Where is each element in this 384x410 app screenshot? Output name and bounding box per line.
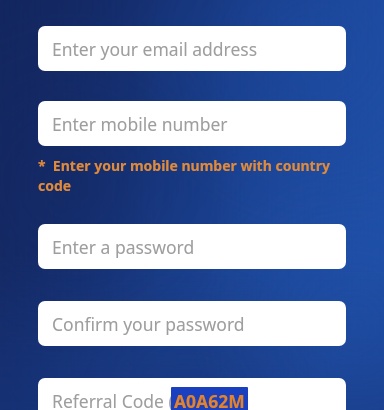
- button[interactable]: Referral code A0A62M: [171, 387, 248, 410]
- button[interactable]: Enter mobile number: [38, 101, 346, 146]
- button[interactable]: Referral Code (O: [38, 378, 346, 410]
- button[interactable]: Confirm your password: [38, 301, 346, 346]
- staticText: A0A62M: [174, 389, 245, 410]
- staticText: Enter mobile number: [52, 112, 228, 136]
- staticText: Enter a password: [52, 235, 195, 259]
- button[interactable]: Enter a password: [38, 224, 346, 269]
- button[interactable]: Enter your email address: [38, 26, 346, 71]
- staticText: Referral Code (O: [52, 389, 188, 410]
- staticText: Enter your email address: [52, 37, 258, 61]
- staticText: * Enter your mobile number with country …: [38, 156, 350, 196]
- staticText: Confirm your password: [52, 312, 245, 336]
